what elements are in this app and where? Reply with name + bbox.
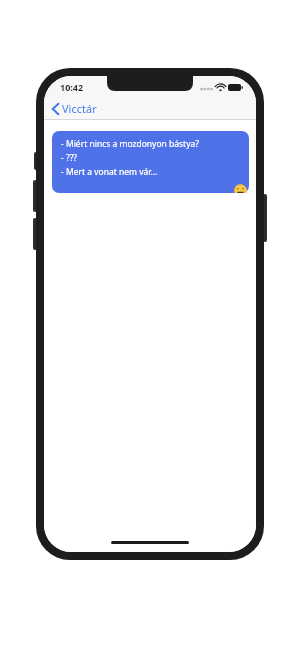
other: Back	[51, 102, 60, 116]
staticText: Vicctár	[62, 101, 97, 116]
staticText: - Miért nincs a mozdonyon bástya?	[61, 138, 199, 150]
staticText: - ???	[61, 152, 78, 164]
button[interactable]: - Miért nincs a mozdonyon bástya?	[52, 131, 249, 193]
button[interactable]: Back	[44, 98, 256, 119]
staticText: - Mert a vonat nem vár...	[61, 166, 158, 178]
staticText: 10:42	[60, 81, 84, 93]
